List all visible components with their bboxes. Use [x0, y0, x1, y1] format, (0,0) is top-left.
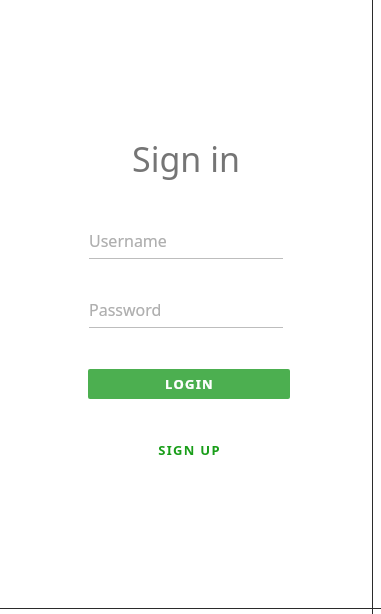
staticText: Sign in [0, 136, 372, 182]
button[interactable]: LOGIN [88, 369, 290, 399]
staticText: LOGIN [165, 375, 214, 393]
button[interactable]: Username [89, 230, 283, 259]
staticText: Password [89, 299, 162, 321]
button[interactable]: SIGN UP [88, 437, 290, 463]
button[interactable]: Password [89, 299, 283, 328]
staticText: Username [89, 230, 167, 252]
staticText: SIGN UP [158, 441, 221, 459]
